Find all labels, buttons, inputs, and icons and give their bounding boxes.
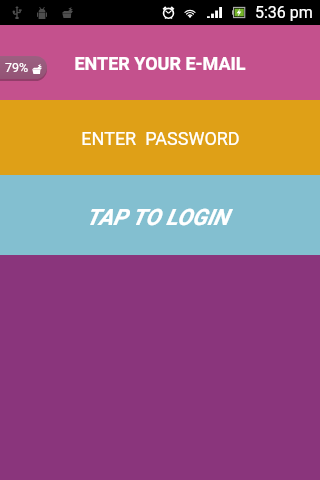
staticText: ENTER YOUR E-MAIL — [74, 53, 246, 74]
staticText: 79% — [5, 60, 29, 75]
other: Alarm set — [162, 6, 175, 19]
button[interactable]: TAP TO LOGIN — [0, 175, 320, 255]
other: USB connected — [12, 6, 22, 19]
other: Battery charging — [62, 7, 73, 18]
button[interactable]: ENTER PASSWORD — [0, 100, 320, 175]
other: Battery charging — [32, 64, 42, 74]
staticText: 79% — [5, 58, 29, 73]
other: Android system — [37, 7, 47, 19]
staticText: 5:36 pm — [255, 3, 313, 22]
button[interactable]: ENTER YOUR E-MAIL — [0, 25, 320, 100]
other: Mobile signal — [207, 7, 222, 18]
other: Wi-Fi signal — [184, 7, 196, 18]
other: Battery 79 percent, charging — [232, 7, 245, 18]
staticText: TAP TO LOGIN — [86, 204, 229, 230]
staticText: ENTER PASSWORD — [81, 128, 240, 149]
